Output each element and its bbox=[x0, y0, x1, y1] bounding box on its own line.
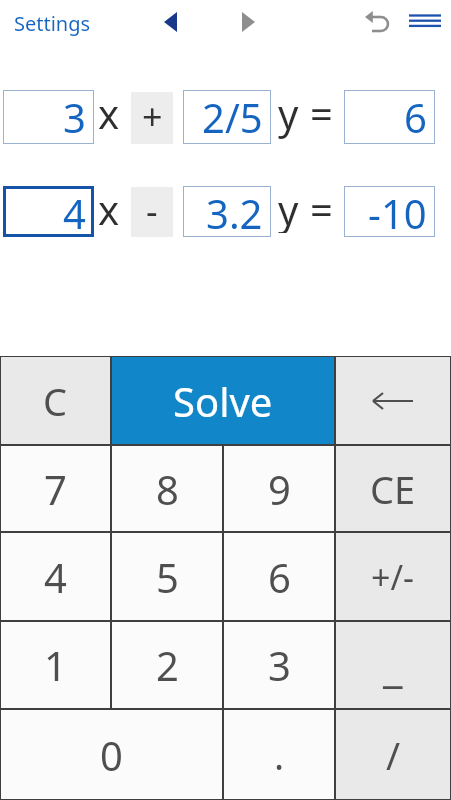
staticText: 6 bbox=[404, 90, 427, 144]
button[interactable] bbox=[232, 4, 268, 40]
button[interactable]: 2/5 bbox=[183, 90, 271, 144]
staticText: 3.2 bbox=[206, 186, 263, 237]
button[interactable] bbox=[152, 4, 188, 40]
button[interactable]: . bbox=[223, 709, 335, 800]
staticText: y bbox=[278, 86, 299, 140]
staticText: C bbox=[43, 375, 68, 427]
button[interactable]: 3 bbox=[223, 621, 335, 709]
staticText: x bbox=[98, 86, 120, 140]
button[interactable]: 4 bbox=[0, 532, 111, 621]
button[interactable]: 8 bbox=[111, 445, 223, 532]
staticText: - bbox=[146, 186, 158, 235]
button[interactable]: Solve bbox=[111, 356, 335, 445]
button[interactable]: - bbox=[131, 187, 173, 237]
staticText: 5 bbox=[156, 550, 179, 604]
button[interactable]: 6 bbox=[344, 90, 435, 144]
button[interactable]: 0 bbox=[0, 709, 223, 800]
button[interactable]: CE bbox=[335, 445, 451, 532]
button[interactable]: 3 bbox=[3, 90, 94, 144]
staticText: = bbox=[310, 86, 333, 140]
button[interactable] bbox=[335, 356, 451, 445]
button[interactable]: 6 bbox=[223, 532, 335, 621]
button[interactable]: C bbox=[0, 356, 111, 445]
staticText: Settings bbox=[14, 10, 91, 37]
staticText: 2 bbox=[156, 638, 179, 692]
button[interactable]: 5 bbox=[111, 532, 223, 621]
staticText: _ bbox=[383, 635, 403, 695]
staticText: 0 bbox=[100, 728, 123, 782]
staticText: 8 bbox=[156, 462, 179, 516]
staticText: x bbox=[98, 182, 120, 233]
button[interactable]: _ bbox=[335, 621, 451, 709]
staticText: 3 bbox=[63, 90, 86, 144]
staticText: = bbox=[310, 182, 333, 233]
staticText: 6 bbox=[268, 550, 291, 604]
staticText: CE bbox=[370, 463, 416, 515]
button[interactable] bbox=[403, 8, 447, 36]
button[interactable]: + bbox=[131, 92, 173, 144]
button[interactable]: Settings bbox=[8, 6, 98, 40]
staticText: 2/5 bbox=[202, 90, 263, 144]
button[interactable]: 2 bbox=[111, 621, 223, 709]
button[interactable]: 4 bbox=[3, 186, 94, 237]
button[interactable]: +/- bbox=[335, 532, 451, 621]
staticText: 7 bbox=[44, 462, 67, 516]
staticText: 4 bbox=[63, 186, 86, 237]
staticText: + bbox=[142, 92, 163, 141]
staticText: 3 bbox=[268, 638, 291, 692]
staticText: . bbox=[274, 729, 285, 781]
staticText: +/- bbox=[371, 554, 415, 600]
button[interactable]: / bbox=[335, 709, 451, 800]
staticText: 1 bbox=[44, 638, 67, 692]
staticText: 4 bbox=[44, 550, 67, 604]
staticText: / bbox=[386, 729, 401, 781]
button[interactable] bbox=[357, 6, 393, 42]
staticText: 9 bbox=[268, 462, 291, 516]
staticText: -10 bbox=[368, 186, 427, 237]
staticText: y bbox=[278, 182, 299, 233]
button[interactable]: 1 bbox=[0, 621, 111, 709]
button[interactable]: 3.2 bbox=[183, 186, 271, 237]
button[interactable]: 7 bbox=[0, 445, 111, 532]
button[interactable]: -10 bbox=[344, 186, 435, 237]
staticText: Solve bbox=[173, 374, 273, 428]
button[interactable]: 9 bbox=[223, 445, 335, 532]
